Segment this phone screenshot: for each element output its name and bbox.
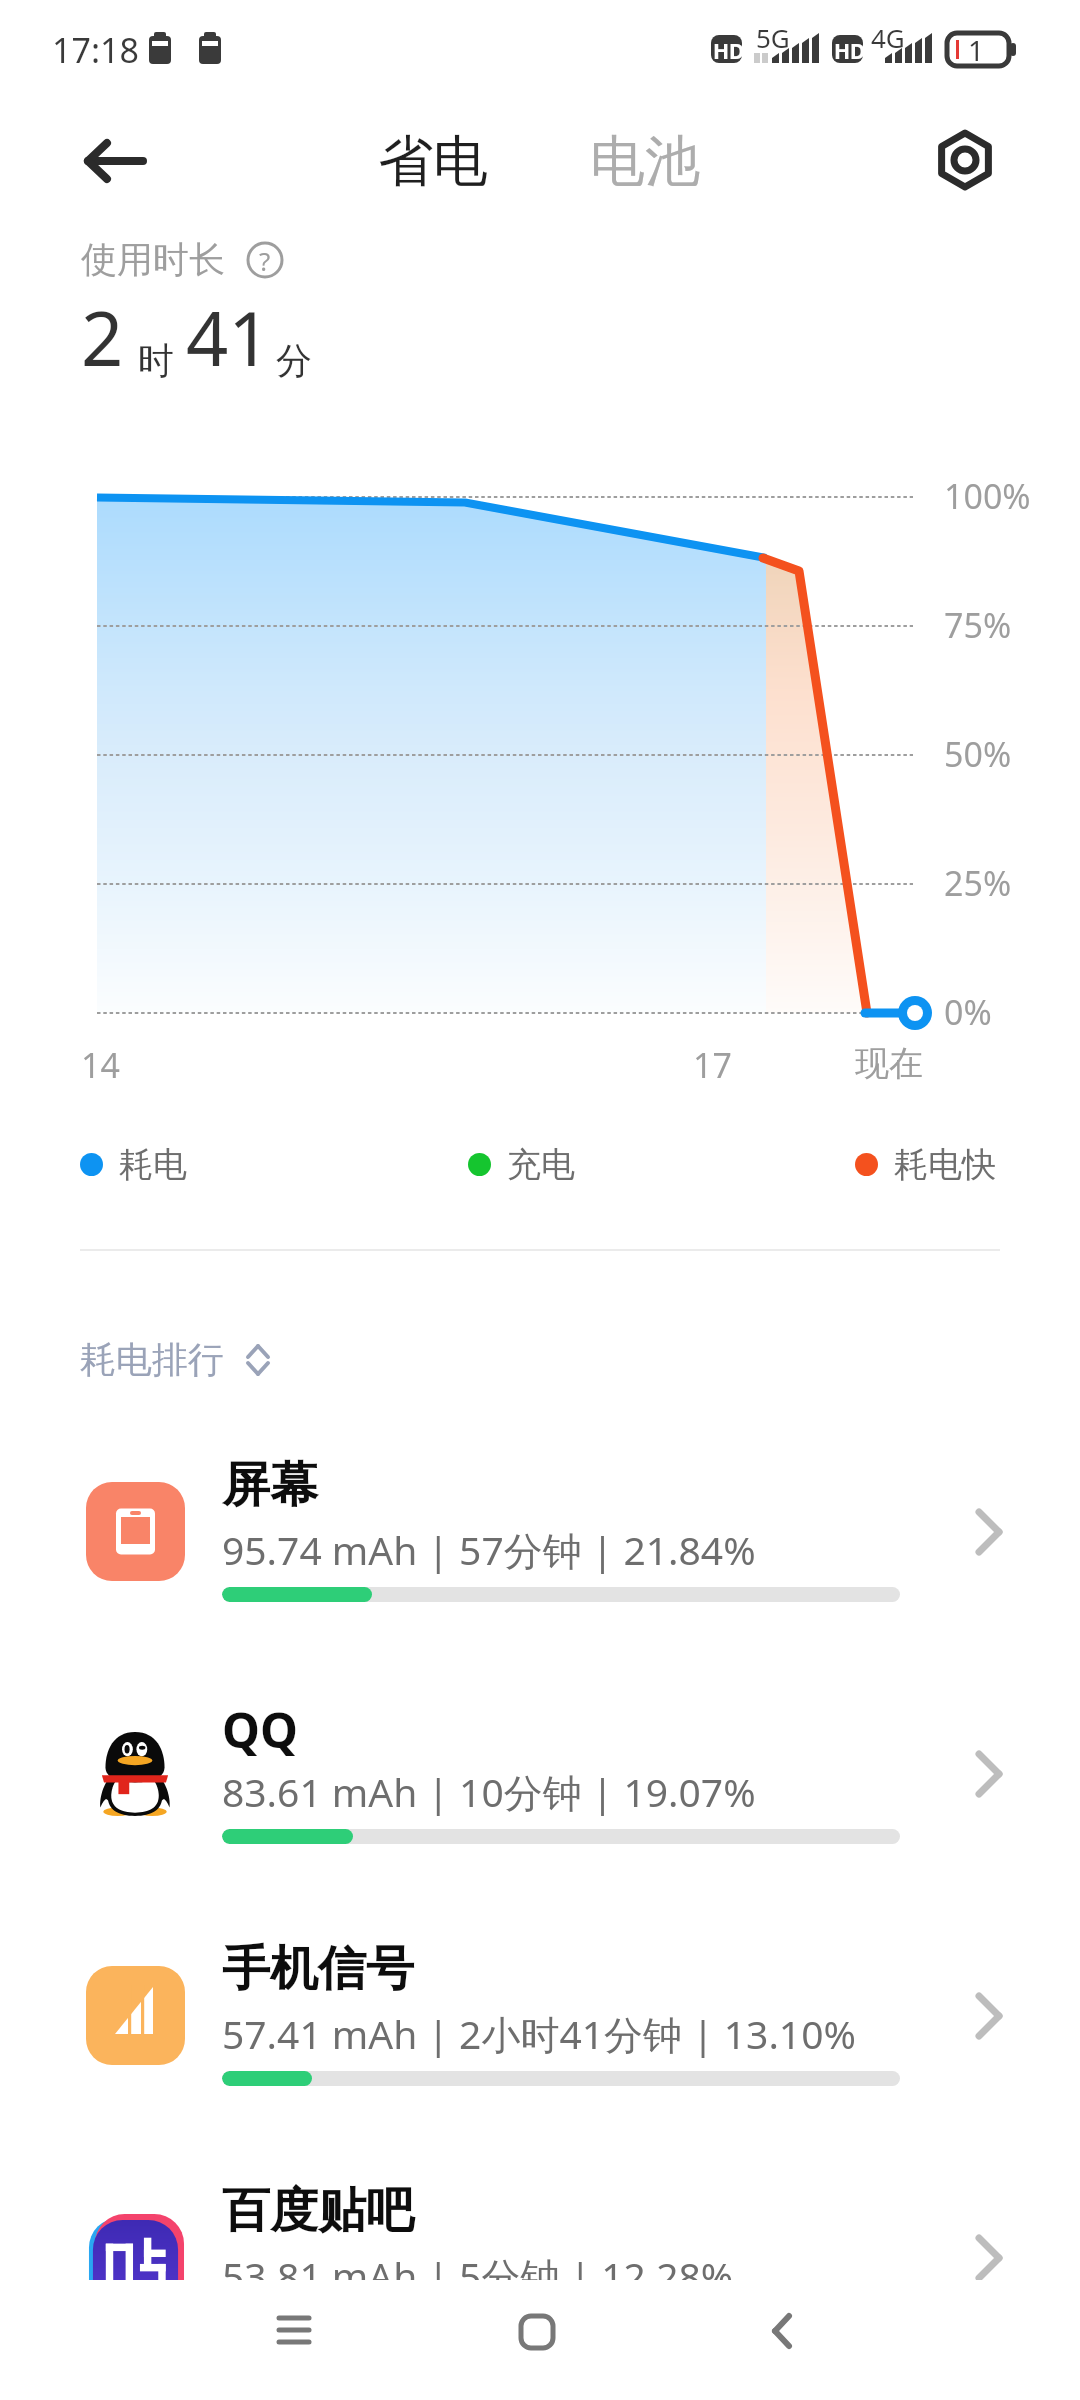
staticText: 50% [944,731,1012,777]
staticText: 省电 [378,127,488,196]
button[interactable]: Home [503,2300,573,2370]
button[interactable]: QQ [0,1679,1080,1905]
staticText: HD [713,37,745,66]
staticText: 25% [944,860,1012,906]
staticText: 14 [81,1042,120,1088]
staticText: 百度贴吧 [222,2181,414,2241]
staticText: 现在 [855,1042,923,1085]
staticText: 4G [871,20,905,55]
staticText: QQ [222,1697,298,1762]
staticText: ? [259,243,271,278]
button[interactable]: 屏幕 [0,1437,1080,1663]
button[interactable]: Back [748,2298,818,2368]
staticText: 75% [944,602,1012,648]
staticText: 57.41 mAh | 2小时41分钟 | 13.10% [222,2007,856,2060]
button[interactable]: 耗电排行 [80,1337,276,1382]
button[interactable]: 百度贴吧 [0,2163,1080,2389]
staticText: 时 [138,338,174,383]
button[interactable]: Help [247,242,283,278]
staticText: 手机信号 [222,1939,414,1999]
staticText: 0% [944,989,992,1035]
staticText: 耗电排行 [80,1337,224,1382]
staticText: 1 [968,31,985,69]
staticText: 充电 [507,1143,575,1186]
staticText: HD [834,37,866,66]
staticText: 耗电快 [894,1143,996,1186]
button[interactable]: 耗电 [80,1143,187,1186]
staticText: 使用时长 [81,237,225,282]
staticText: 17:18 [52,27,139,73]
button[interactable]: Settings [932,127,998,193]
staticText: 95.74 mAh | 57分钟 | 21.84% [222,1523,756,1576]
staticText: 屏幕 [222,1455,318,1515]
button[interactable]: 充电 [468,1143,575,1186]
button[interactable]: Recent apps [258,2299,328,2369]
staticText: 分 [276,338,312,383]
button[interactable]: 省电 [378,127,488,196]
staticText: 5G [756,20,790,55]
button[interactable]: 电池 [590,127,700,196]
staticText: 53.81 mAh | 5分钟 | 12.28% [222,2249,734,2302]
staticText: 耗电 [119,1143,187,1186]
staticText: 41 [186,287,271,388]
button[interactable]: 手机信号 [0,1921,1080,2147]
staticText: 100% [944,473,1031,519]
staticText: 83.61 mAh | 10分钟 | 19.07% [222,1765,756,1818]
staticText: 2 [81,287,124,388]
button[interactable]: 耗电快 [855,1143,996,1186]
button[interactable]: Back [58,127,128,197]
staticText: 电池 [590,127,700,196]
staticText: 17 [693,1042,732,1088]
